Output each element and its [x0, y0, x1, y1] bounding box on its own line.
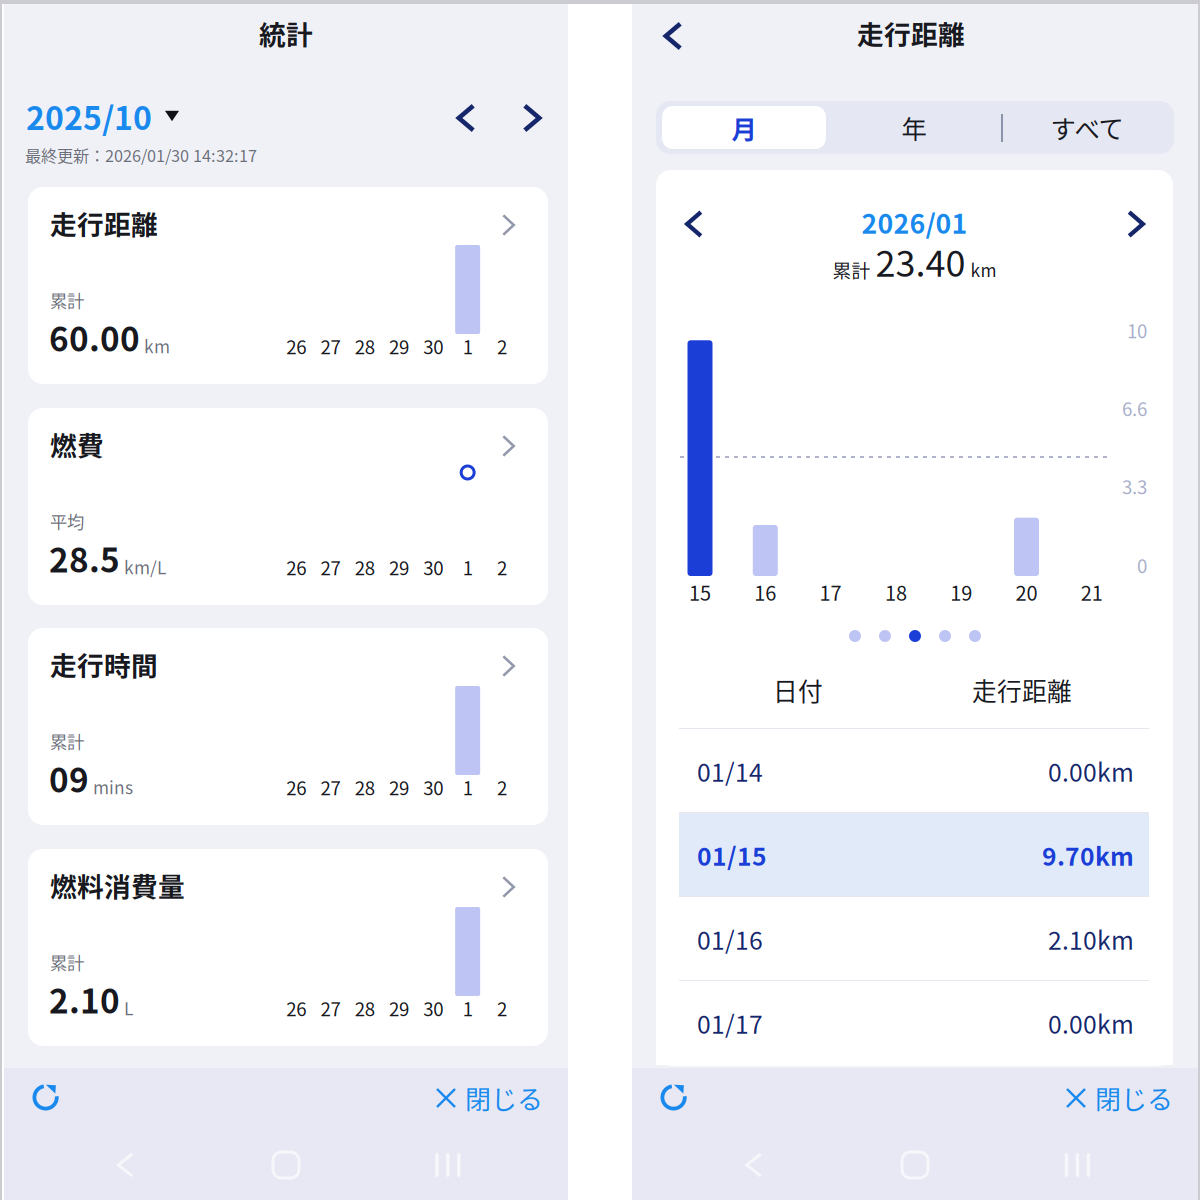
button[interactable]: 閉じる [423, 1072, 543, 1124]
staticText: km [970, 257, 996, 282]
staticText: 2.10 [49, 975, 120, 1023]
staticText: 26 [286, 553, 306, 580]
staticText: 01/15 [697, 837, 767, 873]
staticText: 29 [389, 553, 409, 580]
staticText: 27 [320, 994, 340, 1021]
staticText: 走行距離 [857, 14, 965, 52]
button[interactable]: Refresh [21, 1070, 73, 1122]
staticText: 29 [389, 773, 409, 800]
staticText: 28 [355, 332, 375, 359]
staticText: 燃料消費量 [50, 866, 185, 904]
staticText: 統計 [259, 14, 313, 52]
staticText: 28 [355, 994, 375, 1021]
staticText: 15 [689, 577, 711, 606]
button[interactable]: Recent apps [1054, 1142, 1100, 1188]
button[interactable]: Previous month [671, 201, 717, 247]
staticText: 01/17 [697, 1005, 763, 1041]
staticText: 21 [1081, 577, 1103, 606]
button[interactable]: Home [892, 1142, 938, 1188]
staticText: 日付 [773, 672, 823, 708]
staticText: 23.40 [875, 235, 965, 287]
staticText: 30 [423, 994, 443, 1021]
staticText: 累計 [832, 256, 870, 283]
staticText: 0 [1137, 551, 1147, 578]
staticText: 累計 [50, 728, 84, 754]
staticText: 30 [423, 773, 443, 800]
staticText: 2026/01 [861, 203, 967, 241]
staticText: 28 [355, 553, 375, 580]
staticText: 28.5 [49, 534, 120, 582]
button[interactable]: Next month [1113, 201, 1159, 247]
staticText: 01/16 [697, 921, 763, 957]
staticText: 累計 [50, 287, 84, 313]
button[interactable]: Back [731, 1142, 777, 1188]
button[interactable]: Back [102, 1142, 148, 1188]
staticText: 2025/10 [26, 93, 152, 139]
staticText: 走行時間 [50, 645, 158, 683]
button[interactable]: Previous month [440, 92, 492, 144]
staticText: 走行距離 [972, 672, 1072, 708]
staticText: 19 [950, 577, 972, 606]
staticText: 2 [497, 332, 507, 359]
staticText: すべて [1050, 109, 1123, 146]
staticText: 2 [497, 773, 507, 800]
staticText: 9.70km [1042, 837, 1134, 873]
staticText: 28 [355, 773, 375, 800]
button[interactable]: Back [645, 8, 701, 64]
staticText: 27 [320, 773, 340, 800]
staticText: km/L [124, 554, 166, 579]
button[interactable]: Home [263, 1142, 309, 1188]
staticText: 30 [423, 553, 443, 580]
button[interactable]: Refresh [649, 1070, 701, 1122]
staticText: 平均 [50, 508, 84, 534]
button[interactable]: 燃費 [28, 408, 548, 605]
staticText: 閉じる [1095, 1079, 1173, 1117]
staticText: 1 [463, 773, 473, 800]
button[interactable]: 走行距離 [28, 187, 548, 384]
staticText: 10 [1127, 316, 1147, 343]
staticText: 27 [320, 553, 340, 580]
staticText: 30 [423, 332, 443, 359]
button[interactable]: 燃料消費量 [28, 849, 548, 1046]
staticText: 20 [1015, 577, 1037, 606]
staticText: 18 [885, 577, 907, 606]
staticText: 26 [286, 773, 306, 800]
staticText: 2 [497, 553, 507, 580]
button[interactable]: 01/14 [656, 729, 1173, 813]
staticText: 26 [286, 332, 306, 359]
staticText: L [124, 995, 133, 1020]
staticText: 17 [820, 577, 842, 606]
staticText: 2.10km [1048, 921, 1134, 957]
staticText: 月 [731, 109, 756, 146]
staticText: 6.6 [1122, 394, 1147, 421]
staticText: 0.00km [1048, 753, 1134, 789]
staticText: 0.00km [1048, 1005, 1134, 1041]
staticText: 閉じる [465, 1079, 543, 1117]
staticText: 09 [49, 754, 89, 802]
button[interactable]: 閉じる [1053, 1072, 1173, 1124]
staticText: mins [93, 774, 133, 799]
staticText: 1 [463, 553, 473, 580]
button[interactable]: 走行時間 [28, 628, 548, 825]
button[interactable]: 月 [662, 106, 826, 149]
staticText: 29 [389, 332, 409, 359]
staticText: 26 [286, 994, 306, 1021]
staticText: 01/14 [697, 753, 763, 789]
button[interactable]: Recent apps [425, 1142, 471, 1188]
staticText: 2 [497, 994, 507, 1021]
button[interactable]: すべて [1002, 106, 1172, 149]
staticText: 年 [901, 109, 926, 146]
staticText: 16 [754, 577, 776, 606]
button[interactable]: 年 [828, 106, 1000, 149]
button[interactable]: Next month [506, 92, 558, 144]
button[interactable]: 01/16 [656, 897, 1173, 981]
staticText: 3.3 [1122, 472, 1147, 499]
button[interactable]: 01/15 [656, 813, 1173, 897]
staticText: 27 [320, 332, 340, 359]
staticText: 29 [389, 994, 409, 1021]
staticText: 1 [463, 332, 473, 359]
staticText: 60.00 [49, 313, 140, 361]
staticText: 最終更新：2026/01/30 14:32:17 [25, 143, 257, 167]
button[interactable]: 2025/10 [26, 93, 179, 139]
button[interactable]: 01/17 [656, 981, 1173, 1065]
